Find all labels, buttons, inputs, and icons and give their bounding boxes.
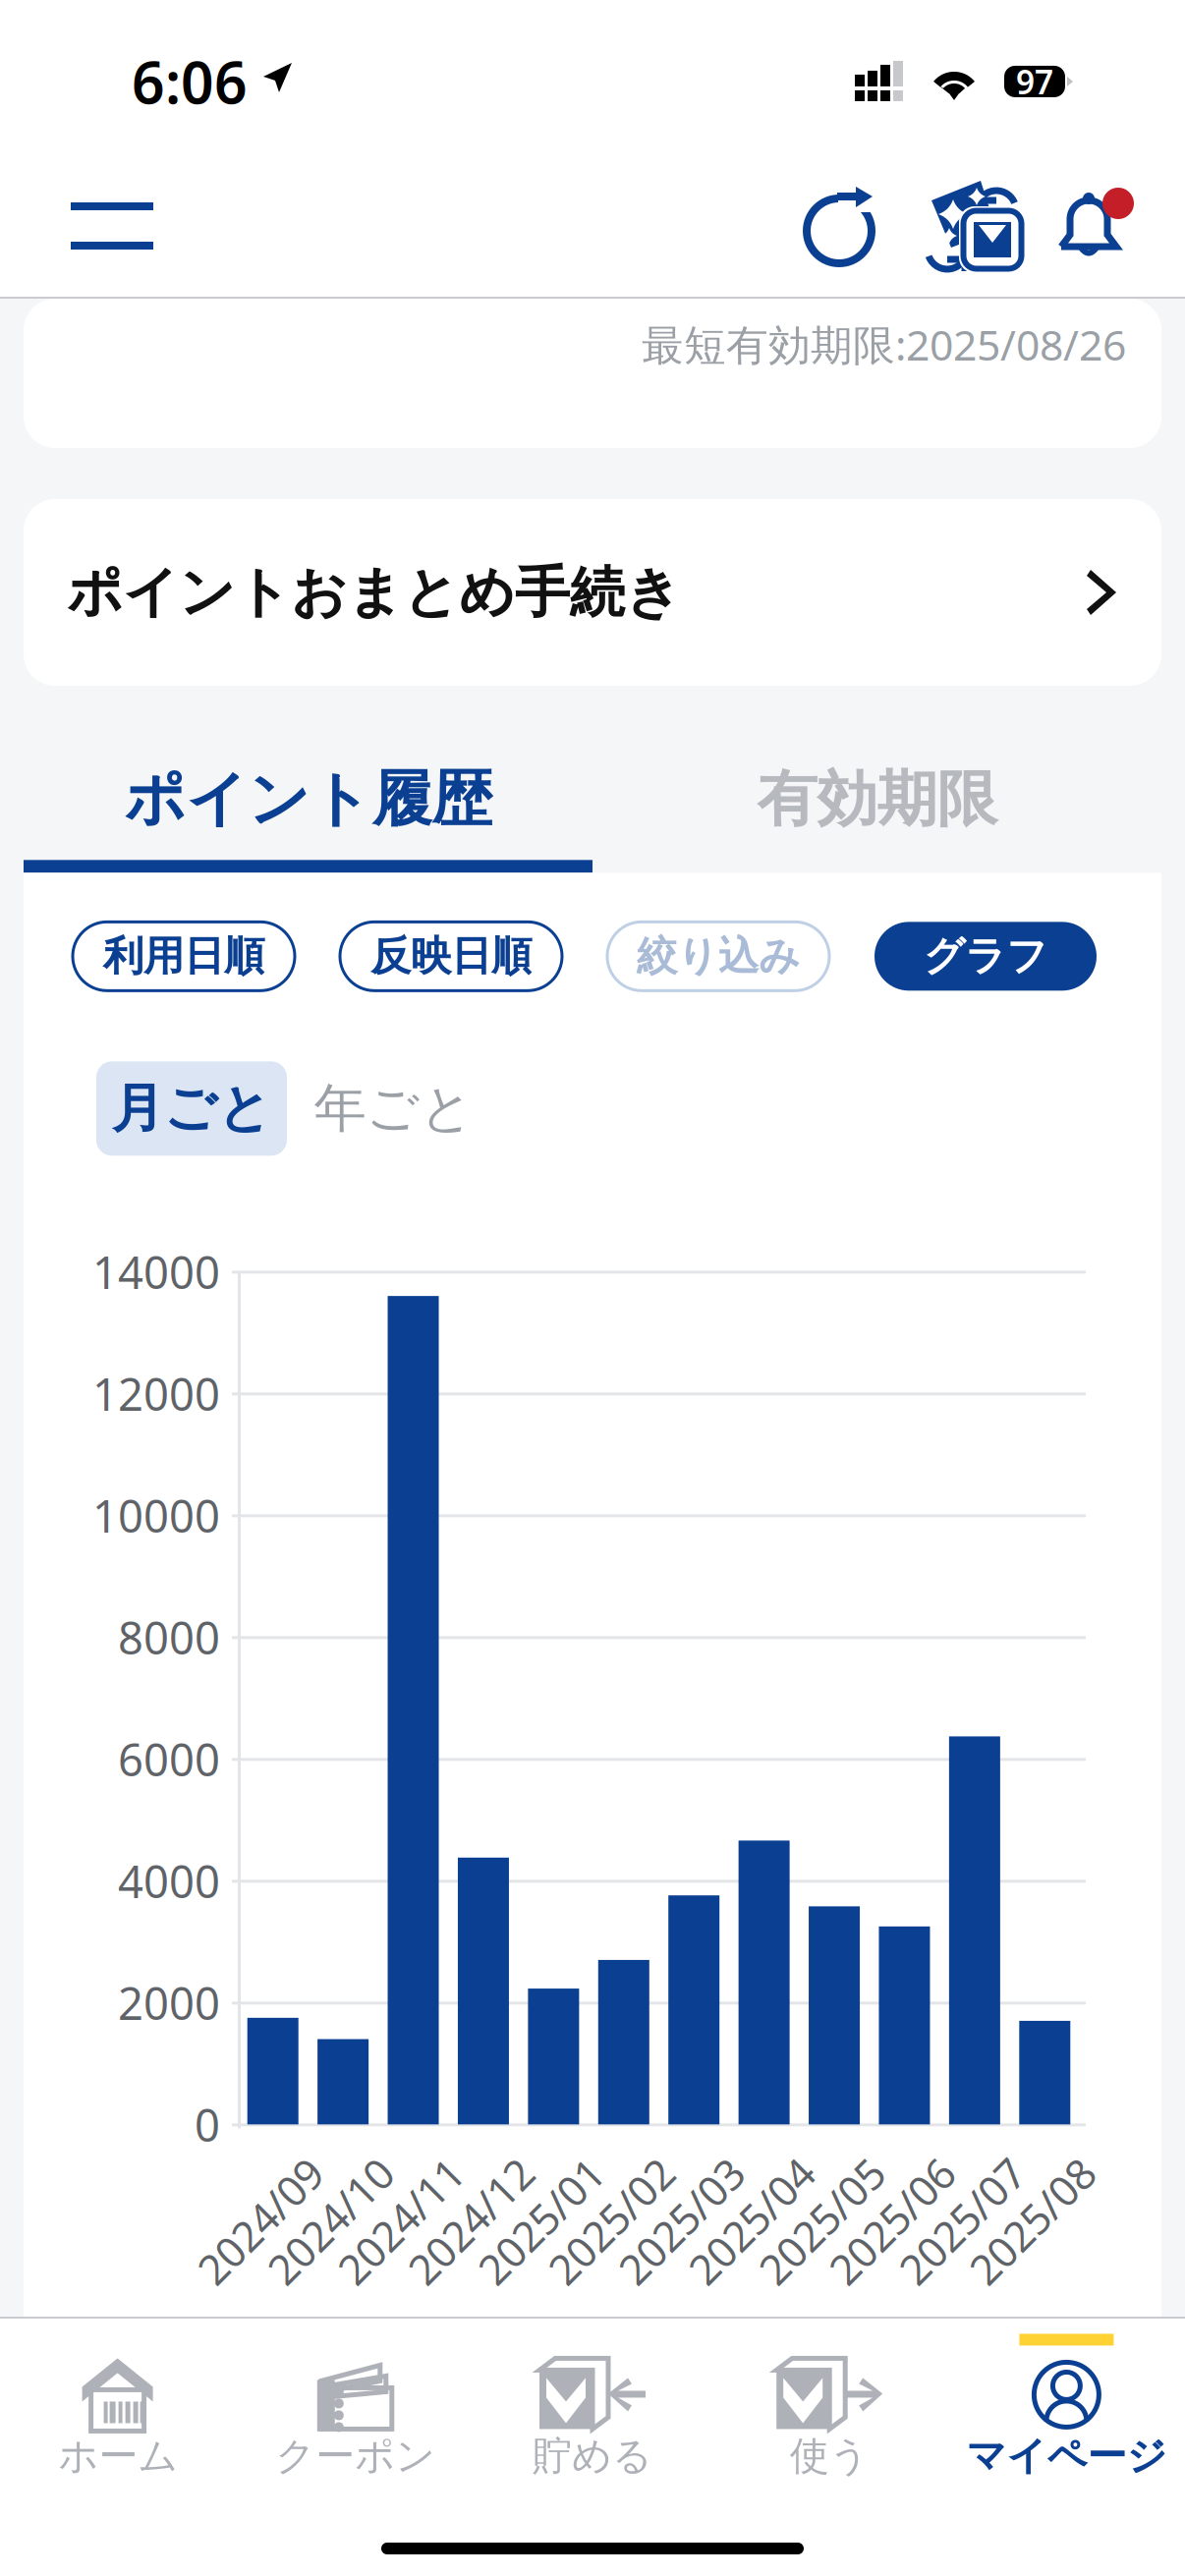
staticText: 2025/08	[913, 2145, 1070, 2200]
staticText: 月ごと	[112, 1076, 272, 1141]
staticText: 0	[195, 2095, 220, 2154]
staticText: 6000	[118, 1729, 220, 1788]
staticText: 4000	[118, 1851, 220, 1910]
button[interactable]: 年ごと	[310, 1061, 478, 1156]
button[interactable]: 使う	[711, 2334, 948, 2480]
staticText: 2025/05	[703, 2145, 860, 2200]
staticText: 年ごと	[314, 1076, 474, 1141]
button[interactable]: 絞り込み	[607, 922, 829, 991]
staticText: 6:06	[132, 43, 248, 120]
button[interactable]: 月ごと	[96, 1061, 287, 1156]
button[interactable]: ポイント履歴	[24, 762, 592, 873]
staticText: 2025/01	[422, 2145, 579, 2200]
button[interactable]: Notifications	[1047, 188, 1142, 264]
button[interactable]: Refresh	[790, 187, 888, 265]
staticText: 貯める	[533, 2432, 652, 2480]
staticText: 2025/03	[562, 2145, 719, 2200]
staticText: 12000	[92, 1364, 220, 1423]
staticText: 利用日順	[103, 931, 264, 981]
staticText: ポイントおまとめ手続き	[67, 559, 681, 626]
button[interactable]: Stamp card	[914, 175, 1028, 277]
button[interactable]: ポイントおまとめ手続き	[24, 499, 1161, 686]
staticText: マイページ	[966, 2432, 1167, 2480]
button[interactable]: 有効期限	[592, 762, 1161, 873]
staticText: 2024/12	[352, 2145, 509, 2200]
button[interactable]: 貯める	[474, 2334, 711, 2480]
staticText: 2025/04	[632, 2145, 790, 2200]
staticText: クーポン	[275, 2432, 436, 2480]
staticText: 14000	[92, 1242, 220, 1301]
staticText: 2025/06	[773, 2145, 930, 2200]
staticText: 2024/09	[141, 2145, 298, 2200]
button[interactable]: グラフ	[875, 922, 1097, 991]
staticText: 10000	[92, 1486, 220, 1545]
button[interactable]: Menu	[53, 175, 171, 277]
button[interactable]: マイページ	[948, 2334, 1185, 2480]
staticText: 8000	[118, 1607, 220, 1667]
staticText: ホーム	[59, 2432, 178, 2480]
staticText: 97	[1016, 60, 1053, 103]
staticText: 2025/07	[843, 2145, 1000, 2200]
button[interactable]: 利用日順	[73, 922, 295, 991]
staticText: グラフ	[924, 931, 1047, 981]
staticText: 反映日順	[370, 931, 532, 981]
staticText: 使う	[790, 2432, 869, 2480]
staticText: 最短有効期限:2025/08/26	[642, 316, 1126, 372]
staticText: ポイント履歴	[124, 762, 492, 836]
button[interactable]: 反映日順	[340, 922, 562, 991]
button[interactable]: ホーム	[0, 2334, 237, 2480]
staticText: 2000	[118, 1973, 220, 2032]
button[interactable]: クーポン	[237, 2334, 474, 2480]
staticText: 絞り込み	[637, 931, 800, 981]
staticText: 2025/02	[492, 2145, 649, 2200]
staticText: 2024/11	[282, 2145, 439, 2200]
staticText: 有効期限	[757, 762, 997, 836]
staticText: 2024/10	[211, 2145, 369, 2200]
